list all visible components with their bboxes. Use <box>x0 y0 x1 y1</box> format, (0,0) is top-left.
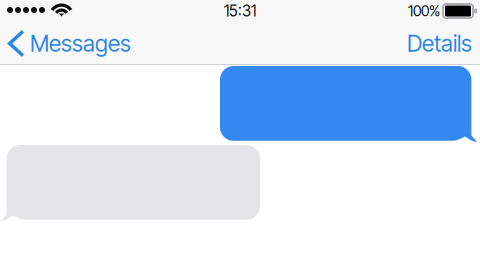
staticText: Messages <box>30 30 131 57</box>
staticText: 100% <box>408 2 440 20</box>
staticText: 15:31 <box>224 2 256 20</box>
button[interactable]: Details <box>407 30 480 57</box>
staticText: Details <box>407 30 472 57</box>
button[interactable]: Messages <box>0 30 131 57</box>
